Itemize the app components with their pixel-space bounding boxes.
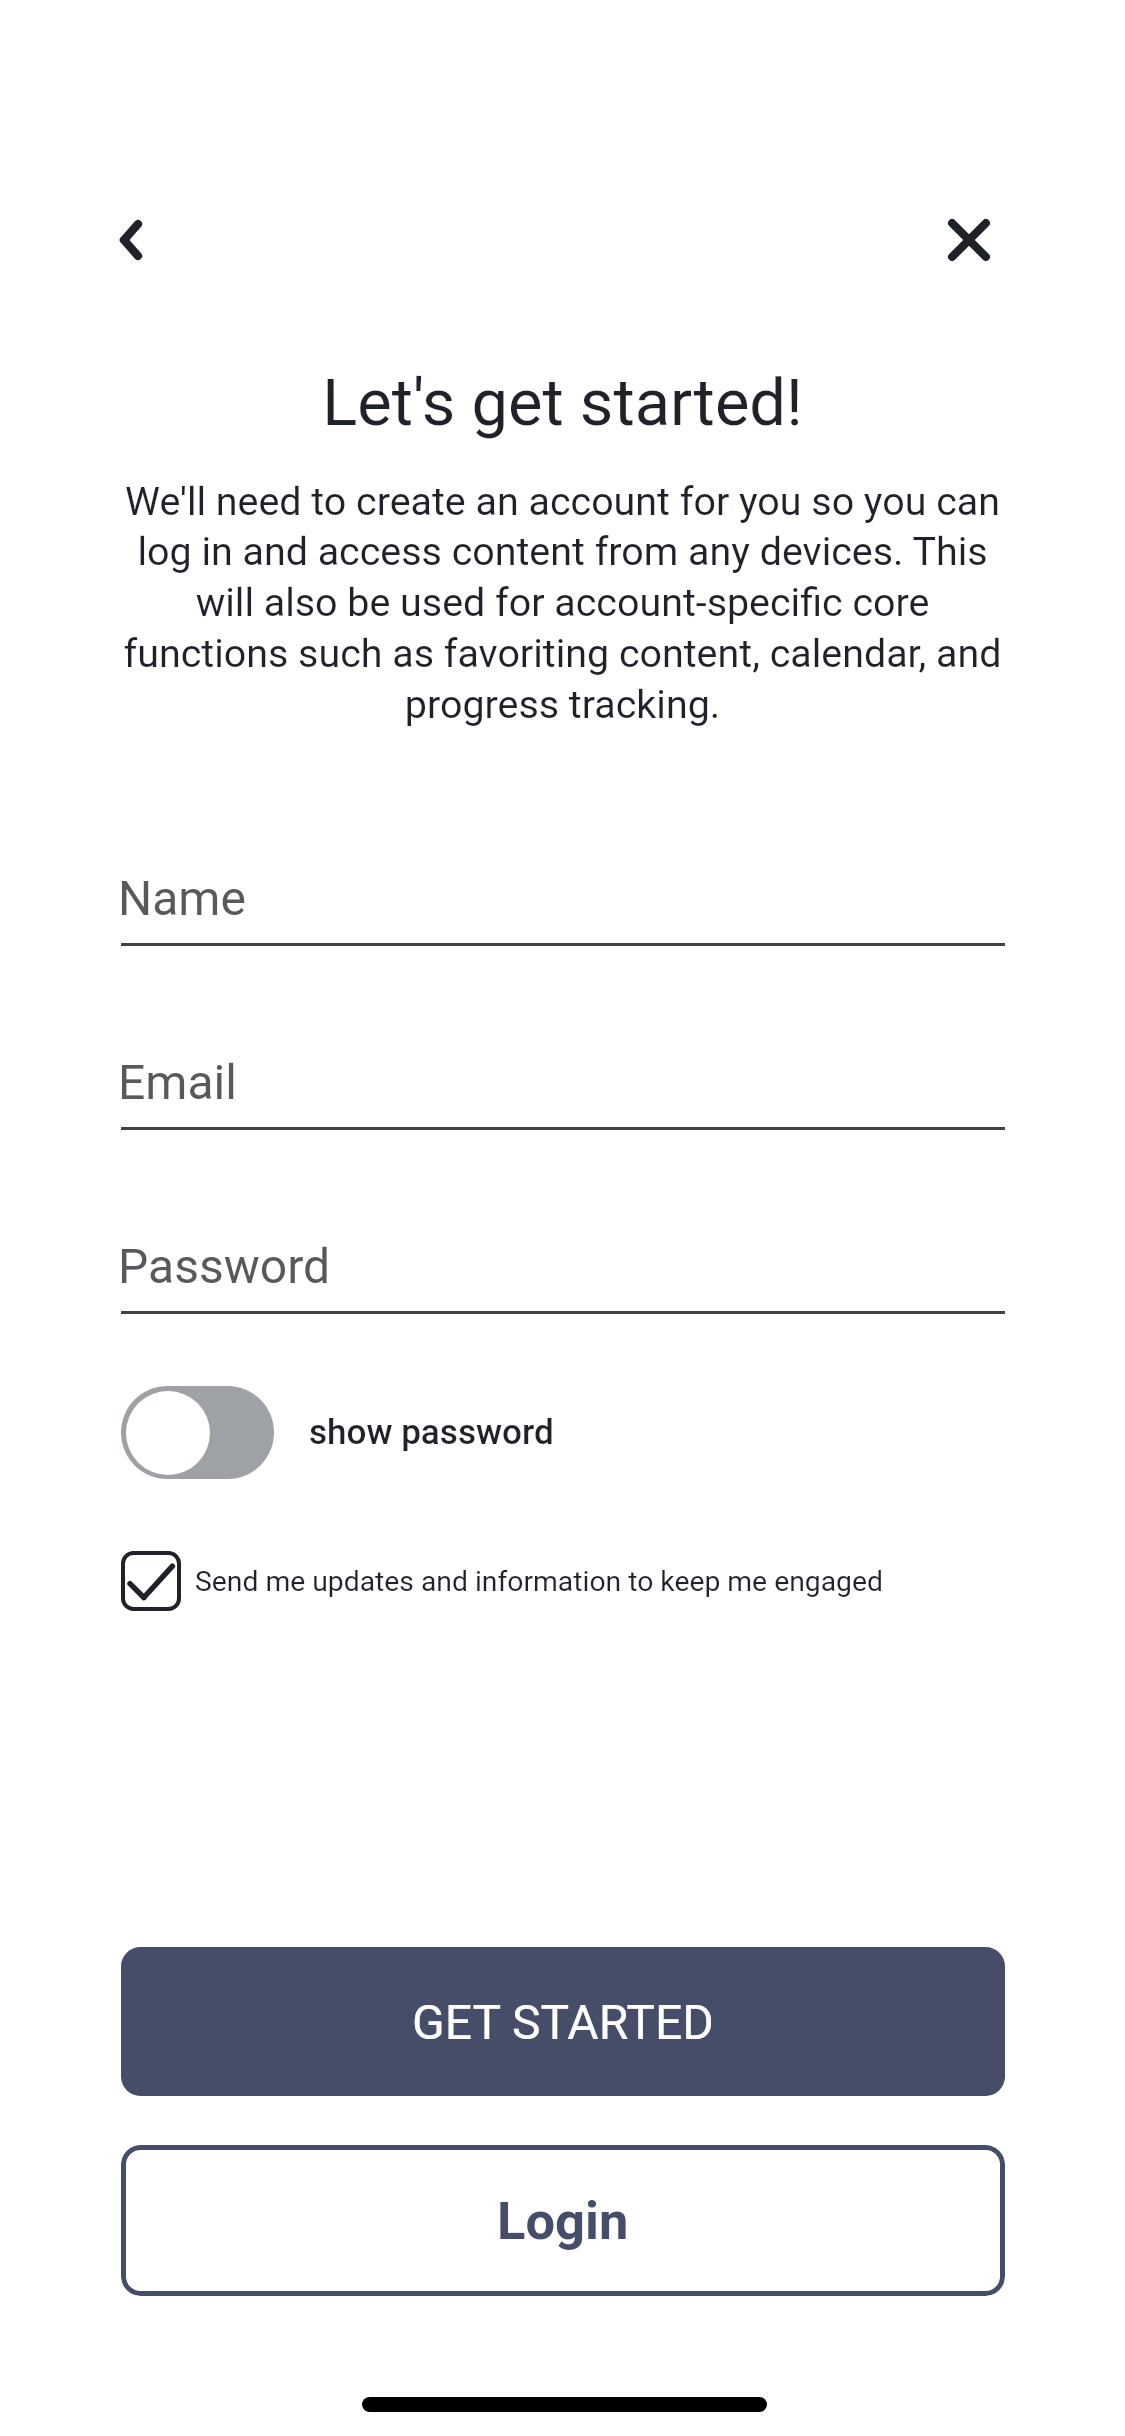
button[interactable]: Send me updates and information to keep … bbox=[121, 1548, 951, 1614]
staticText: Login bbox=[497, 2190, 629, 2252]
staticText: Let's get started! bbox=[0, 365, 1125, 441]
button[interactable]: Name bbox=[121, 870, 1005, 946]
button[interactable]: Login bbox=[121, 2145, 1005, 2296]
staticText: We'll need to create an account for you … bbox=[118, 478, 1007, 728]
button[interactable]: GET STARTED bbox=[121, 1947, 1005, 2096]
button[interactable]: show password bbox=[121, 1386, 561, 1479]
button[interactable]: Back bbox=[87, 196, 175, 284]
staticText: Send me updates and information to keep … bbox=[195, 1565, 883, 1598]
button[interactable]: Email bbox=[121, 1054, 1005, 1130]
staticText: Password bbox=[118, 1238, 331, 1294]
staticText: GET STARTED bbox=[412, 1994, 714, 2050]
staticText: show password bbox=[309, 1412, 554, 1453]
staticText: Email bbox=[118, 1054, 237, 1110]
staticText: Name bbox=[118, 870, 246, 926]
button[interactable]: Password bbox=[121, 1238, 1005, 1314]
button[interactable]: Close bbox=[925, 196, 1013, 284]
